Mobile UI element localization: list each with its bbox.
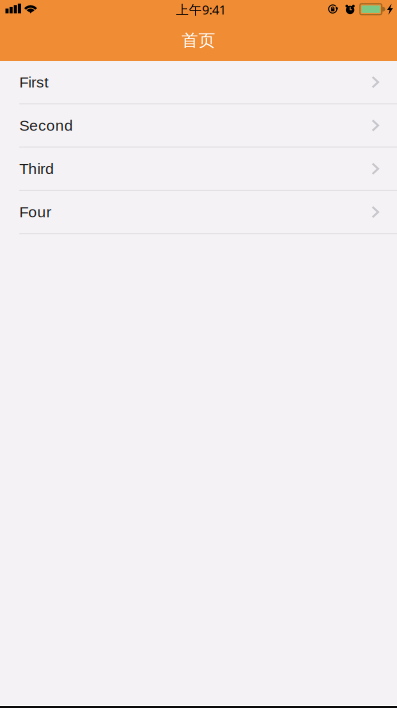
button[interactable]: Four	[0, 191, 397, 234]
staticText: Four	[19, 203, 51, 221]
staticText: Second	[19, 117, 73, 134]
staticText: First	[19, 74, 48, 91]
staticText: Third	[19, 160, 54, 177]
button[interactable]: Second	[0, 104, 397, 148]
staticText: 上午9:41	[176, 1, 226, 18]
staticText: 首页	[181, 30, 215, 51]
button[interactable]: First	[0, 61, 397, 104]
button[interactable]: Third	[0, 148, 397, 191]
